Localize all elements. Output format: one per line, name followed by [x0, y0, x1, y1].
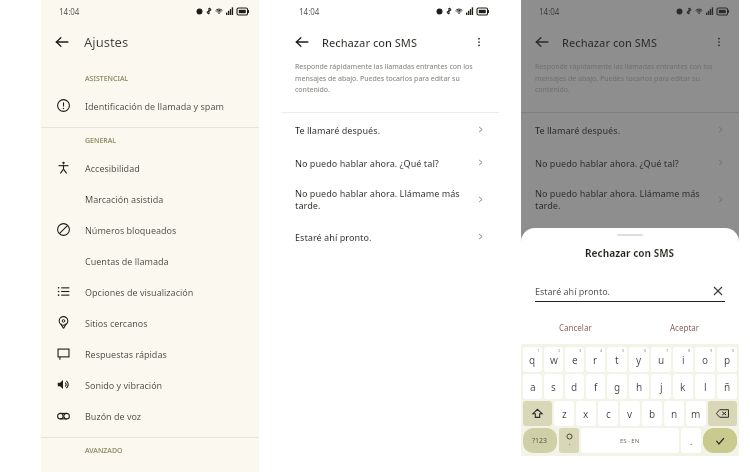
button[interactable]: Clear text	[711, 284, 725, 298]
button[interactable]: g	[607, 374, 627, 399]
button[interactable]: Marcación asistida	[41, 183, 259, 214]
staticText: Te llamaré después.	[295, 124, 470, 136]
staticText: Accesibilidad	[85, 162, 140, 174]
button[interactable]: Buzón de voz	[41, 400, 259, 431]
button[interactable]: Enter	[703, 428, 737, 453]
button[interactable]: Estaré ahí pronto.	[521, 220, 739, 253]
button[interactable]: n	[664, 401, 684, 426]
button[interactable]: k	[673, 374, 693, 399]
button[interactable]: Back	[292, 32, 312, 52]
button[interactable]: w	[544, 347, 563, 372]
button[interactable]: Aceptar	[630, 316, 739, 338]
button[interactable]: b	[642, 401, 662, 426]
staticText: z	[562, 407, 567, 421]
button[interactable]: ñ	[717, 374, 737, 399]
button[interactable]: Back	[52, 32, 72, 52]
button[interactable]: z	[554, 401, 574, 426]
staticText: AVANZADO	[85, 446, 123, 456]
staticText: c	[606, 407, 611, 421]
button[interactable]: q	[523, 347, 542, 372]
staticText: v	[627, 407, 633, 421]
staticText: 8	[688, 348, 691, 353]
staticText: a	[530, 380, 536, 394]
staticText: 6	[644, 348, 647, 353]
button[interactable]: l	[695, 374, 715, 399]
button[interactable]: Números bloqueados	[41, 214, 259, 245]
staticText: GENERAL	[85, 136, 117, 146]
staticText: i	[682, 353, 685, 367]
staticText: s	[551, 380, 556, 394]
button[interactable]: t	[607, 347, 627, 372]
button[interactable]: More options	[469, 32, 489, 52]
button[interactable]: h	[629, 374, 649, 399]
staticText: Rechazar con SMS	[562, 35, 657, 50]
staticText: 9	[710, 348, 713, 353]
staticText: 1	[537, 348, 540, 353]
button[interactable]: Sonido y vibración	[41, 369, 259, 400]
button[interactable]: s	[544, 374, 563, 399]
staticText: Opciones de visualización	[85, 286, 194, 298]
button[interactable]: d	[565, 374, 584, 399]
staticText: Estaré ahí pronto.	[295, 231, 470, 243]
button[interactable]: No puedo hablar ahora. Llámame más tarde…	[281, 179, 499, 220]
button[interactable]: i	[673, 347, 693, 372]
button[interactable]: o	[695, 347, 715, 372]
staticText: 14:04	[59, 6, 80, 17]
button[interactable]: Emoji and comma	[559, 428, 579, 453]
button[interactable]: Backspace	[708, 401, 737, 426]
button[interactable]: No puedo hablar ahora. Llámame más tarde…	[521, 179, 739, 220]
staticText: Identificación de llamada y spam	[85, 100, 224, 112]
button[interactable]: v	[620, 401, 640, 426]
button[interactable]: j	[651, 374, 671, 399]
staticText: y	[636, 353, 642, 367]
button[interactable]: .	[681, 428, 701, 453]
staticText: Sonido y vibración	[85, 379, 163, 391]
button[interactable]: More options	[709, 32, 729, 52]
staticText: q	[529, 353, 536, 367]
button[interactable]: m	[686, 401, 706, 426]
staticText: g	[614, 380, 621, 394]
button[interactable]: u	[651, 347, 671, 372]
button[interactable]: x	[576, 401, 596, 426]
staticText: f	[594, 380, 598, 394]
button[interactable]: Te llamaré después.	[281, 113, 499, 146]
button[interactable]: Cancelar	[521, 316, 630, 338]
button[interactable]: No puedo hablar ahora. ¿Qué tal?	[521, 146, 739, 179]
button[interactable]: f	[586, 374, 605, 399]
button[interactable]: c	[598, 401, 618, 426]
button[interactable]: a	[523, 374, 542, 399]
staticText: n	[671, 407, 678, 421]
button[interactable]: Shift	[523, 401, 552, 426]
button[interactable]: Cuentas de llamada	[41, 245, 259, 276]
staticText: 0	[732, 348, 735, 353]
staticText: l	[704, 380, 707, 394]
button[interactable]: p	[717, 347, 737, 372]
button[interactable]: Accesibilidad	[41, 152, 259, 183]
button[interactable]: Back	[532, 32, 552, 52]
staticText: Respuestas rápidas	[85, 348, 167, 360]
button[interactable]: No puedo hablar ahora. ¿Qué tal?	[281, 146, 499, 179]
staticText: Rechazar con SMS	[585, 246, 675, 260]
button[interactable]: Identificación de llamada y spam	[41, 90, 259, 121]
button[interactable]: Te llamaré después.	[521, 113, 739, 146]
staticText: 4	[600, 348, 603, 353]
button[interactable]: Back	[41, 22, 259, 62]
staticText: No puedo hablar ahora. ¿Qué tal?	[535, 157, 710, 169]
staticText: Buzón de voz	[85, 410, 142, 422]
button[interactable]: ES · EN	[581, 428, 679, 453]
button[interactable]: y	[629, 347, 649, 372]
staticText: k	[680, 380, 686, 394]
staticText: b	[649, 407, 656, 421]
staticText: e	[572, 353, 578, 367]
button[interactable]: e	[565, 347, 584, 372]
button[interactable]: Opciones de visualización	[41, 276, 259, 307]
button[interactable]: Estaré ahí pronto.	[281, 220, 499, 253]
button[interactable]: ?123	[523, 428, 557, 453]
button[interactable]: Sitios cercanos	[41, 307, 259, 338]
button[interactable]: r	[586, 347, 605, 372]
staticText: p	[724, 353, 731, 367]
staticText: Números bloqueados	[85, 224, 177, 236]
staticText: Cuentas de llamada	[85, 255, 169, 267]
button[interactable]: Respuestas rápidas	[41, 338, 259, 369]
staticText: 14:04	[539, 6, 560, 17]
